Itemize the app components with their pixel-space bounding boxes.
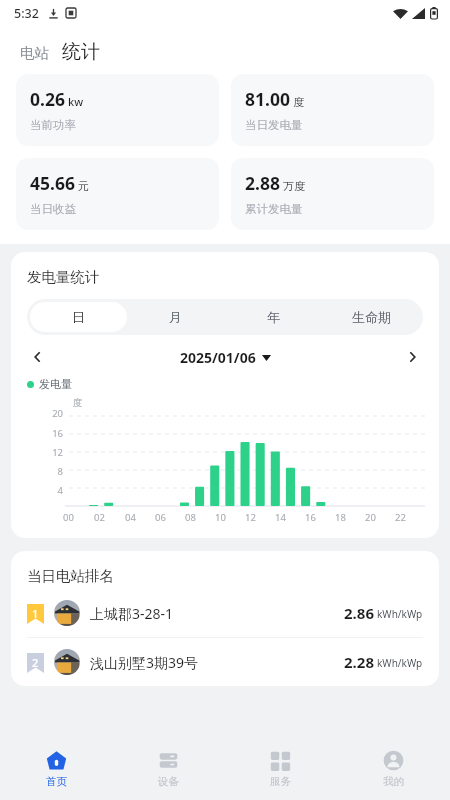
button[interactable]: 我的 bbox=[337, 738, 450, 800]
staticText: kWh/kWp bbox=[377, 656, 423, 670]
button[interactable]: Previous day bbox=[25, 344, 51, 370]
button[interactable]: 2 bbox=[11, 638, 439, 686]
button[interactable]: 设备 bbox=[112, 738, 224, 800]
staticText: 首页 bbox=[46, 775, 67, 788]
staticText: 16 bbox=[11, 427, 63, 440]
staticText: 20 bbox=[365, 511, 376, 524]
staticText: 日 bbox=[72, 309, 85, 325]
staticText: 45.66 bbox=[30, 171, 75, 195]
staticText: 04 bbox=[125, 511, 136, 524]
staticText: kw bbox=[68, 94, 84, 109]
staticText: 当日收益 bbox=[30, 202, 76, 216]
staticText: 2.28 bbox=[344, 652, 374, 672]
staticText: 生命期 bbox=[352, 309, 391, 325]
button[interactable]: 日 bbox=[30, 302, 127, 332]
button[interactable]: 服务 bbox=[224, 738, 337, 800]
staticText: kWh/kWp bbox=[377, 607, 423, 621]
staticText: 1 bbox=[32, 606, 39, 621]
staticText: 当前功率 bbox=[30, 118, 76, 132]
staticText: 上城郡3-28-1 bbox=[90, 604, 174, 623]
staticText: 14 bbox=[275, 511, 286, 524]
staticText: 元 bbox=[78, 179, 89, 193]
staticText: 万度 bbox=[283, 179, 305, 193]
staticText: 2.88 bbox=[245, 171, 280, 195]
button[interactable]: 首页 bbox=[0, 738, 112, 800]
button[interactable]: 统计 bbox=[62, 40, 100, 64]
staticText: 发电量统计 bbox=[27, 268, 100, 286]
button[interactable]: 电站 bbox=[20, 44, 49, 64]
button[interactable]: 年 bbox=[224, 302, 322, 332]
button[interactable]: Next day bbox=[399, 344, 425, 370]
staticText: 00 bbox=[63, 511, 74, 524]
staticText: 累计发电量 bbox=[245, 202, 303, 216]
staticText: 16 bbox=[305, 511, 316, 524]
staticText: 81.00 bbox=[245, 87, 290, 111]
staticText: 2.86 bbox=[344, 603, 374, 623]
staticText: 发电量 bbox=[39, 377, 72, 391]
staticText: 06 bbox=[155, 511, 166, 524]
button[interactable]: 月 bbox=[127, 302, 224, 332]
staticText: 4 bbox=[11, 484, 63, 497]
button[interactable]: 1 bbox=[11, 589, 439, 637]
staticText: 当日电站排名 bbox=[27, 567, 114, 585]
button[interactable]: 生命期 bbox=[322, 302, 420, 332]
button[interactable]: 45.66 bbox=[16, 158, 219, 230]
staticText: 8 bbox=[11, 465, 63, 478]
staticText: 0.26 bbox=[30, 87, 65, 111]
staticText: 20 bbox=[11, 407, 63, 420]
staticText: 12 bbox=[245, 511, 256, 524]
staticText: 5:32 bbox=[14, 5, 39, 22]
staticText: 设备 bbox=[158, 775, 179, 788]
staticText: 月 bbox=[169, 309, 182, 325]
staticText: 统计 bbox=[62, 40, 100, 64]
staticText: 2 bbox=[32, 655, 39, 670]
staticText: 08 bbox=[185, 511, 196, 524]
staticText: 我的 bbox=[383, 775, 404, 788]
staticText: 度 bbox=[293, 95, 304, 109]
staticText: 浅山别墅3期39号 bbox=[90, 653, 199, 672]
button[interactable]: 2.88 bbox=[231, 158, 434, 230]
button[interactable]: 0.26 bbox=[16, 74, 219, 146]
staticText: 02 bbox=[94, 511, 105, 524]
staticText: 电站 bbox=[20, 44, 49, 62]
staticText: 度 bbox=[73, 397, 83, 409]
staticText: 年 bbox=[267, 309, 280, 325]
staticText: 当日发电量 bbox=[245, 118, 303, 132]
staticText: 22 bbox=[395, 511, 406, 524]
button[interactable]: 81.00 bbox=[231, 74, 434, 146]
staticText: 10 bbox=[215, 511, 226, 524]
staticText: 2025/01/06 bbox=[180, 348, 256, 367]
button[interactable]: 2025/01/06 bbox=[180, 348, 271, 367]
staticText: 12 bbox=[11, 446, 63, 459]
staticText: 18 bbox=[335, 511, 346, 524]
staticText: 服务 bbox=[270, 775, 291, 788]
